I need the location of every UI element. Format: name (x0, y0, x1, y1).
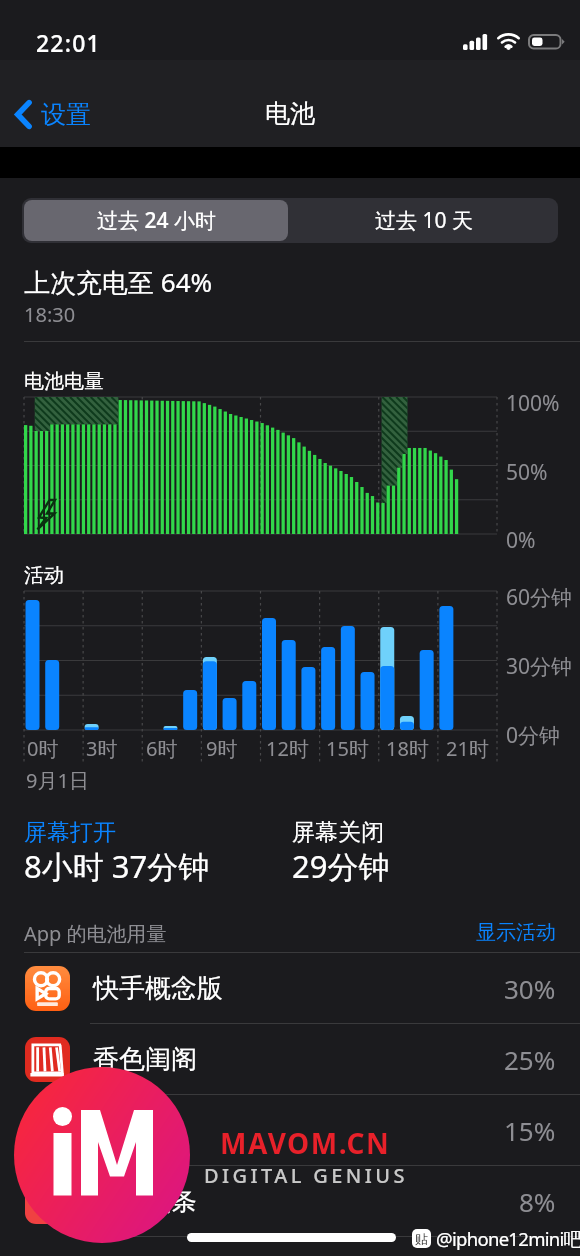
staticText: 活动 (24, 563, 64, 588)
staticText: 6时 (146, 735, 178, 762)
staticText: 香色闺阁 (93, 1043, 197, 1076)
staticText: 8% (519, 1184, 556, 1219)
staticText: 过去 24 小时 (97, 206, 216, 235)
staticText: 快手概念版 (93, 972, 223, 1005)
other: Back (15, 100, 31, 129)
staticText: 过去 10 天 (375, 206, 473, 235)
staticText: 60分钟 (506, 583, 573, 612)
staticText: 上次充电至 64% (24, 264, 213, 300)
staticText: 22:01 (36, 27, 101, 58)
staticText: 15时 (326, 735, 369, 762)
button[interactable]: 微博 (0, 1095, 580, 1165)
button[interactable]: 香色闺阁 (0, 1024, 580, 1094)
staticText: @iphone12mini吧 (436, 1226, 580, 1251)
staticText: 9时 (206, 735, 238, 762)
staticText: 30% (504, 971, 556, 1006)
staticText: 21时 (446, 735, 489, 762)
staticText: 设置 (41, 99, 91, 130)
staticText: 100% (506, 389, 560, 418)
staticText: MAVOM.CN (220, 1124, 391, 1162)
staticText: 电池电量 (24, 369, 104, 394)
staticText: 50% (506, 458, 548, 487)
staticText: 30分钟 (506, 652, 573, 681)
staticText: App 的电池用量 (24, 920, 167, 947)
button[interactable]: 过去 10 天 (290, 198, 558, 243)
staticText: 0时 (27, 735, 59, 762)
button[interactable]: 过去 24 小时 (24, 200, 288, 241)
staticText: 电池 (265, 98, 315, 129)
staticText: 微博 (93, 1114, 145, 1147)
staticText: 8小时 37分钟 (24, 845, 210, 887)
staticText: 18:30 (24, 301, 76, 328)
staticText: 屏幕关闭 (292, 818, 384, 847)
staticText: DIGITAL GENIUS (204, 1162, 408, 1189)
staticText: 今日头条 (93, 1185, 197, 1218)
staticText: 18时 (386, 735, 429, 762)
staticText: 0% (506, 526, 536, 555)
button[interactable]: Back (11, 93, 95, 136)
button[interactable]: 今日头条 (0, 1166, 580, 1236)
staticText: 25% (504, 1042, 556, 1077)
staticText: 屏幕打开 (24, 818, 116, 847)
staticText: 0分钟 (506, 721, 561, 750)
staticText: 12时 (266, 735, 309, 762)
staticText: 29分钟 (292, 845, 390, 887)
staticText: 9月1日 (26, 767, 89, 794)
button[interactable]: 显示活动 (476, 920, 556, 945)
staticText: 15% (504, 1113, 556, 1148)
staticText: 3时 (86, 735, 118, 762)
staticText: 贴 (415, 1231, 428, 1247)
button[interactable]: 快手概念版 (0, 953, 580, 1023)
